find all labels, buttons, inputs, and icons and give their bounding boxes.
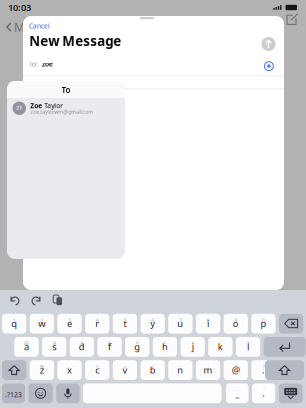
staticText: + (96, 363, 99, 370)
button[interactable]: Add recipient (264, 62, 273, 70)
button[interactable]: Hide keyboard (279, 383, 303, 403)
button[interactable]: Compose (286, 14, 299, 26)
staticText: . (262, 387, 265, 399)
staticText: = (123, 363, 126, 370)
staticText: ( (164, 340, 166, 347)
button[interactable]: ZT (7, 98, 125, 116)
staticText: ? (262, 363, 264, 370)
staticText: _ (235, 387, 239, 399)
staticText: " (247, 340, 249, 347)
staticText: ' (263, 386, 264, 393)
button[interactable]: - (57, 360, 82, 380)
staticText: ! (235, 363, 236, 370)
button[interactable]: .?123 (2, 383, 25, 403)
button[interactable]: / (140, 360, 165, 380)
staticText: ; (180, 363, 181, 370)
staticText: % (40, 363, 44, 370)
button[interactable]: 8 (196, 314, 220, 334)
staticText: 10:03 (8, 1, 31, 14)
button[interactable]: Shift (2, 360, 26, 380)
button[interactable]: 2 (30, 314, 54, 334)
button[interactable]: 5 (113, 314, 137, 334)
staticText: c (95, 364, 99, 376)
staticText: 2 (40, 317, 43, 324)
staticText: e (67, 317, 72, 330)
button[interactable]: 1 (2, 314, 26, 334)
staticText: Taylor (42, 101, 63, 110)
staticText: l (247, 340, 249, 353)
button[interactable]: ; (168, 360, 192, 380)
button[interactable]: = (113, 360, 137, 380)
button[interactable]: " (236, 337, 260, 357)
staticText: zoe (38, 60, 53, 68)
staticText: zoe.taylor.wm@gmail.com (30, 108, 93, 115)
button[interactable]: % (30, 360, 54, 380)
button[interactable]: Send (261, 37, 275, 51)
button[interactable]: Mailboxes (6, 19, 76, 35)
button[interactable]: - (226, 383, 248, 403)
staticText: y (150, 317, 155, 330)
staticText: g (134, 340, 140, 353)
button[interactable]: Redo (31, 295, 42, 306)
staticText: q (11, 317, 17, 330)
button[interactable]: ' (252, 383, 275, 403)
button[interactable]: 7 (168, 314, 192, 334)
staticText: # (53, 340, 56, 347)
button[interactable]: 9 (224, 314, 248, 334)
button[interactable]: ! (224, 360, 248, 380)
staticText: t (123, 317, 126, 330)
staticText: Zoe (30, 101, 42, 110)
staticText: Cancel (29, 22, 50, 30)
staticText: r (95, 317, 99, 330)
staticText: / (152, 363, 154, 370)
button[interactable]: $ (70, 337, 94, 357)
button[interactable]: & (97, 337, 122, 357)
staticText: 9 (234, 317, 237, 324)
button[interactable]: ? (251, 360, 276, 380)
button[interactable]: 3 (57, 314, 82, 334)
button[interactable]: @ (14, 337, 39, 357)
staticText: m (204, 364, 213, 376)
button[interactable]: 4 (85, 314, 109, 334)
button[interactable]: * (125, 337, 149, 357)
staticText: s (52, 340, 56, 353)
staticText: ) (192, 340, 194, 347)
staticText: f (108, 340, 111, 353)
button[interactable]: Shift (265, 360, 304, 380)
staticText: .?123 (5, 390, 22, 399)
staticText: 6 (151, 317, 154, 324)
button[interactable]: Delete (279, 314, 303, 334)
button[interactable]: : (196, 360, 220, 380)
button[interactable]: ) (180, 337, 205, 357)
staticText: 5 (123, 317, 126, 324)
staticText: : (208, 363, 209, 370)
button[interactable]: Return (264, 337, 306, 357)
staticText: w (38, 317, 45, 330)
button[interactable]: 0 (251, 314, 276, 334)
button[interactable]: # (42, 337, 66, 357)
staticText: 8 (207, 317, 210, 324)
staticText: 0 (262, 317, 265, 324)
button[interactable]: Cancel (29, 20, 69, 32)
button[interactable]: ' (208, 337, 232, 357)
staticText: b (150, 364, 156, 376)
staticText: z (40, 364, 44, 376)
staticText: 4 (96, 317, 99, 324)
staticText: To: (29, 60, 38, 68)
staticText: 3 (68, 317, 71, 324)
button[interactable]: 6 (140, 314, 165, 334)
button[interactable]: + (85, 360, 109, 380)
button[interactable]: ( (153, 337, 177, 357)
button[interactable]: Undo (9, 295, 20, 306)
staticText: 1 (13, 317, 16, 324)
staticText: u (177, 317, 183, 330)
staticText: x (67, 364, 72, 376)
staticText: ZT (16, 105, 22, 112)
button[interactable]: Emoji (28, 383, 53, 403)
staticText: 7 (179, 317, 182, 324)
staticText: p (260, 317, 266, 330)
button[interactable]: Paste (53, 295, 63, 306)
button[interactable]: Dictate (56, 383, 80, 403)
staticText: k (218, 340, 223, 353)
button[interactable] (83, 383, 221, 403)
